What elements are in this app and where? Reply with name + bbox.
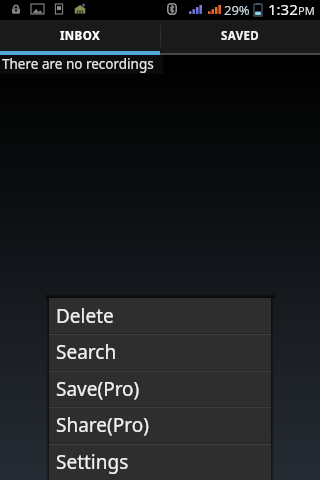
button[interactable]: Settings (49, 444, 271, 480)
staticText: INBOX (60, 28, 101, 44)
button[interactable]: SAVED (160, 20, 320, 55)
staticText: PM (298, 3, 315, 18)
staticText: 1:32 (268, 0, 298, 19)
button[interactable]: Delete (49, 298, 271, 334)
button[interactable]: Search (49, 334, 271, 370)
staticText: Search (56, 339, 117, 365)
staticText: Delete (56, 303, 114, 329)
staticText: 29% (224, 1, 250, 19)
staticText: SAVED (221, 28, 260, 44)
staticText: Share(Pro) (56, 412, 149, 438)
staticText: Settings (56, 449, 129, 475)
button[interactable]: Share(Pro) (49, 407, 271, 443)
staticText: There are no recordings (2, 55, 154, 73)
staticText: Save(Pro) (56, 376, 140, 402)
button[interactable]: Save(Pro) (49, 371, 271, 407)
button[interactable]: INBOX (0, 20, 160, 55)
